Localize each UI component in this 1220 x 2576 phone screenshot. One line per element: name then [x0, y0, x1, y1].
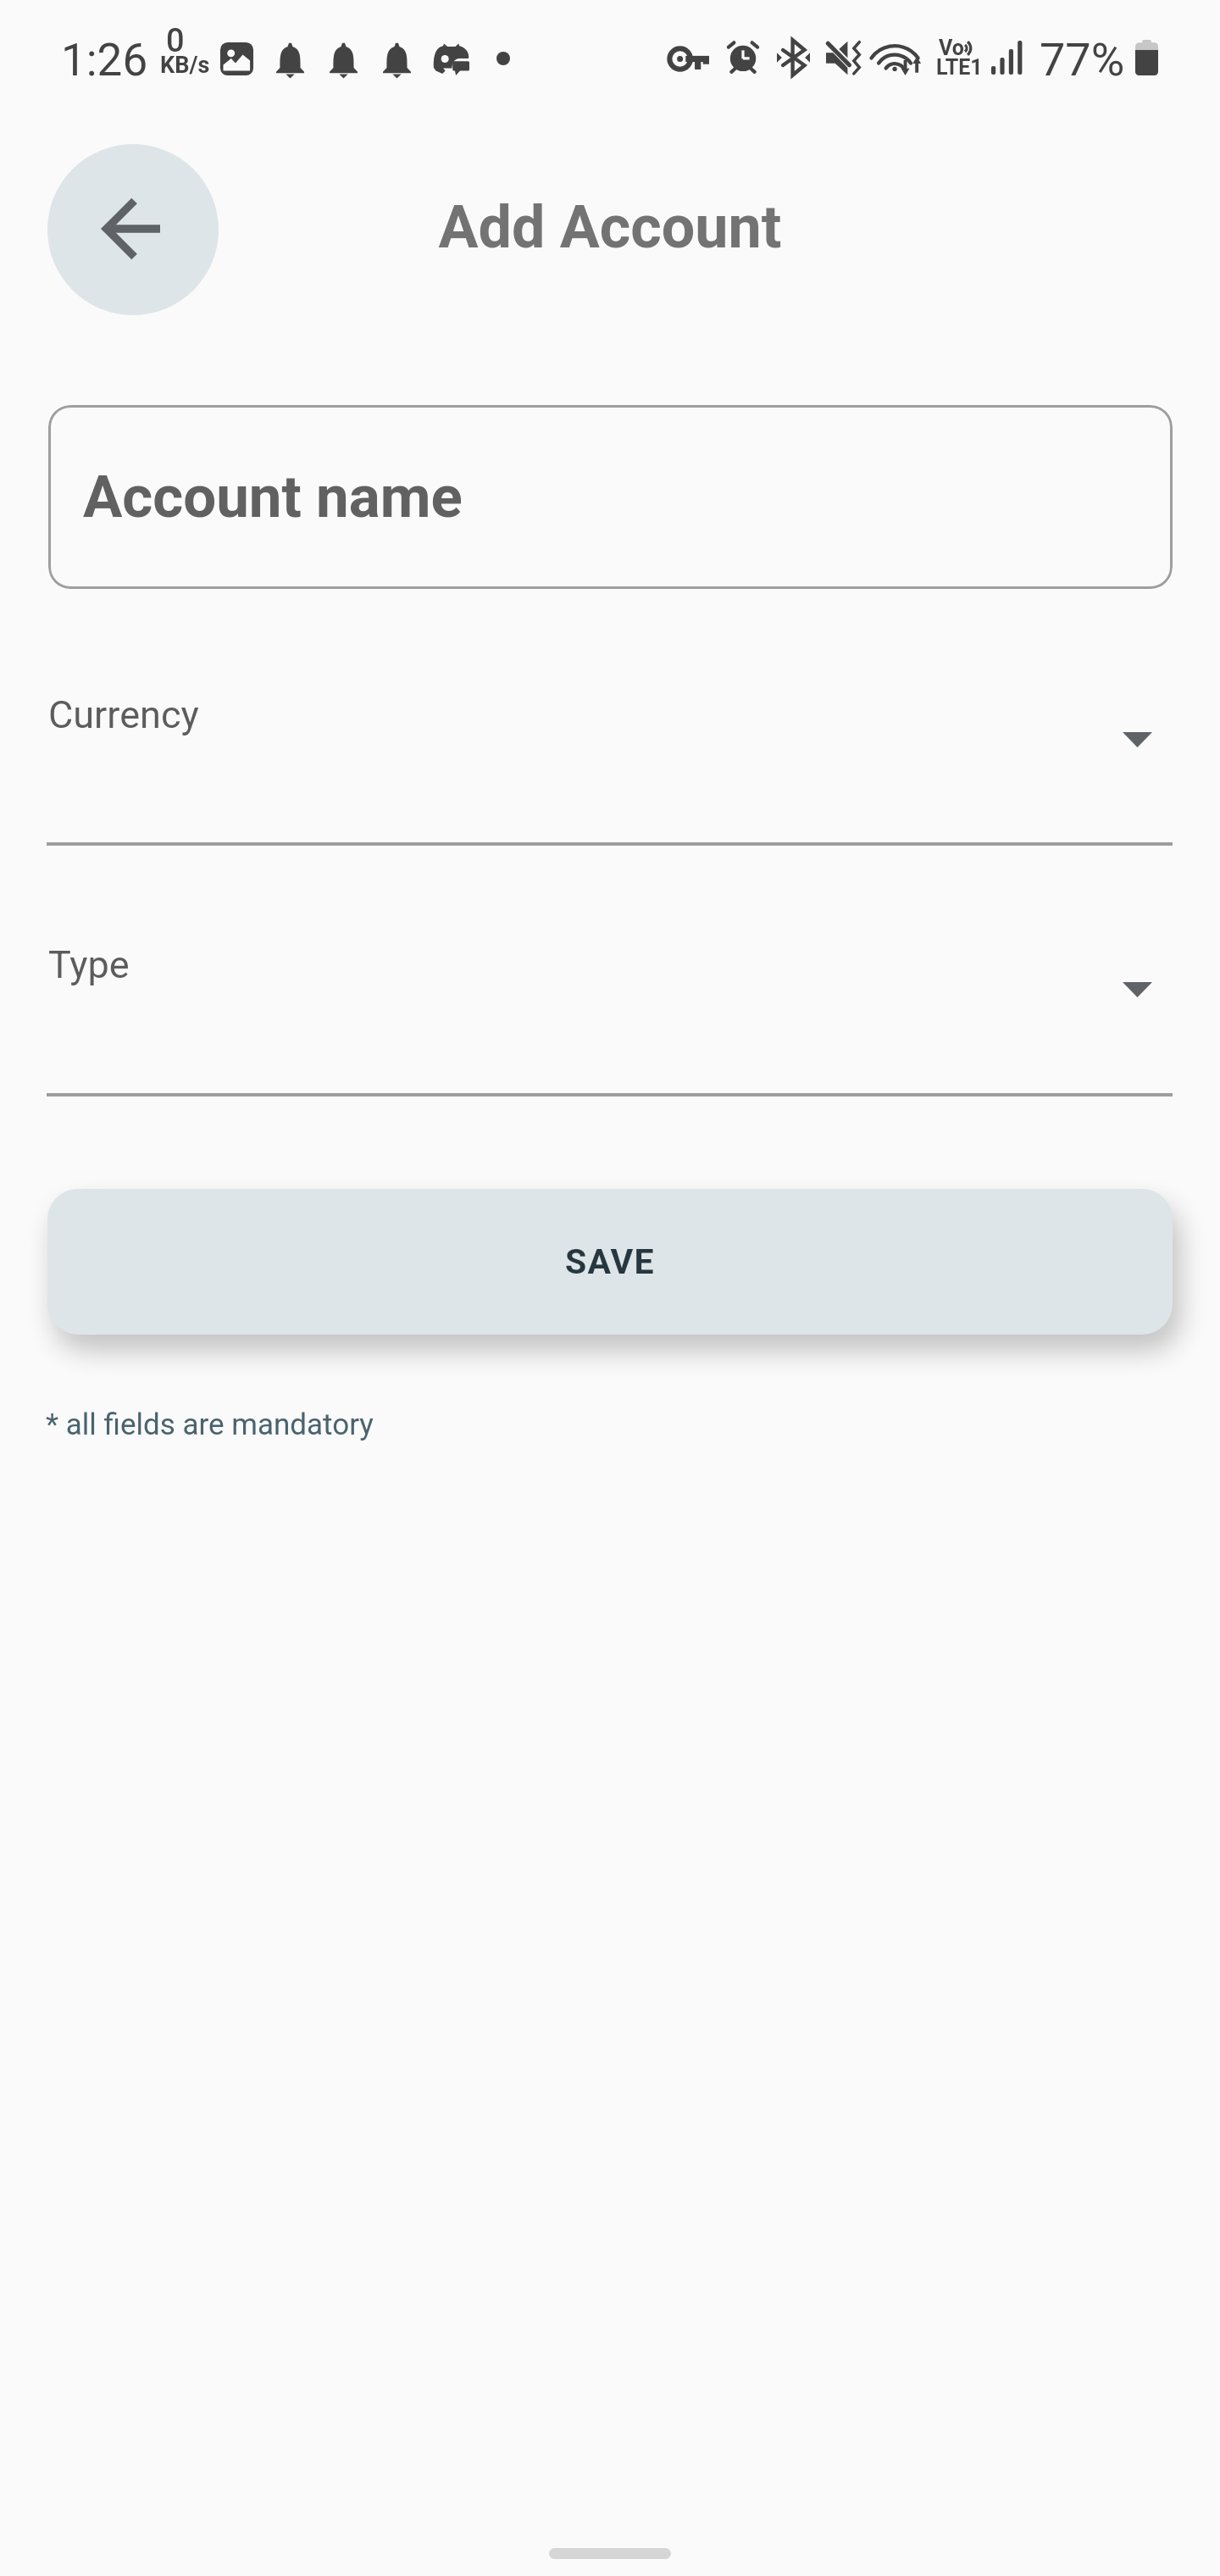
- staticText: 1:26: [61, 34, 148, 86]
- staticText: Currency: [48, 692, 199, 737]
- button[interactable]: Type: [47, 926, 1173, 1097]
- button[interactable]: Account name: [48, 405, 1173, 589]
- staticText: SAVE: [565, 1241, 655, 1282]
- staticText: Account name: [83, 463, 463, 531]
- staticText: Type: [48, 942, 130, 987]
- staticText: 0: [166, 22, 185, 60]
- staticText: 77%: [1040, 33, 1125, 86]
- staticText: * all fields are mandatory: [46, 1407, 374, 1442]
- staticText: Vo: [939, 36, 964, 60]
- button[interactable]: Back: [47, 144, 219, 315]
- staticText: Add Account: [0, 192, 1220, 262]
- button[interactable]: Currency: [47, 676, 1173, 847]
- staticText: LTE1: [936, 55, 983, 80]
- staticText: KB/s: [160, 52, 210, 79]
- button[interactable]: SAVE: [47, 1189, 1173, 1335]
